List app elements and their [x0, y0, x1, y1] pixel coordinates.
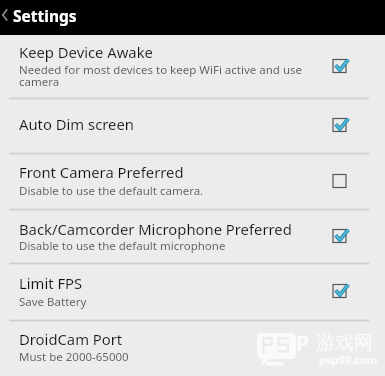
staticText: Back/Camcorder Microphone Preferred	[19, 219, 292, 239]
staticText: Disable to use the default camera.	[19, 183, 204, 199]
staticText: Limit FPS	[19, 273, 83, 293]
button[interactable]: Front Camera Preferred	[0, 154, 385, 209]
button[interactable]: Auto Dim screen	[0, 99, 385, 153]
button[interactable]: Back	[0, 0, 13, 35]
staticText: psp99.com	[319, 352, 378, 367]
staticText: DroidCam Port	[19, 329, 123, 349]
staticText: Keep Device Awake	[19, 42, 153, 62]
button[interactable]: Limit FPS	[0, 264, 385, 320]
staticText: 游戏网	[316, 331, 373, 355]
staticText: Auto Dim screen	[19, 114, 134, 134]
button[interactable]: Checked	[323, 45, 361, 89]
button[interactable]: Checked	[323, 104, 361, 148]
staticText: P	[296, 329, 310, 358]
staticText: Save Battery	[19, 294, 87, 310]
button[interactable]: Keep Device Awake	[0, 35, 385, 98]
button[interactable]: Back/Camcorder Microphone Preferred	[0, 210, 385, 263]
button[interactable]: Unchecked	[323, 160, 361, 204]
button[interactable]: Checked	[323, 215, 361, 259]
staticText: Front Camera Preferred	[19, 162, 184, 182]
staticText: Must be 2000-65000	[19, 349, 129, 365]
staticText: Settings	[13, 5, 77, 26]
button[interactable]: Checked	[323, 270, 361, 314]
button[interactable]: DroidCam Port	[0, 321, 385, 376]
staticText: Needed for most devices to keep WiFi act…	[19, 62, 302, 78]
staticText: Disable to use the default microphone	[19, 238, 226, 254]
staticText: camera	[19, 74, 60, 90]
